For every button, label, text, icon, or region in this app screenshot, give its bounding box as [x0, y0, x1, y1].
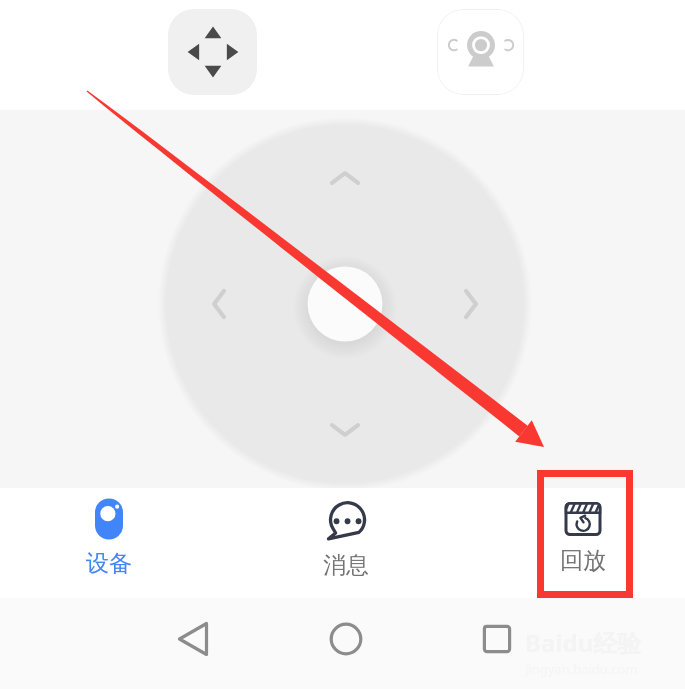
button[interactable]: 回放	[518, 483, 648, 593]
button[interactable]: Direction pad	[168, 9, 257, 95]
button[interactable]: Recents	[462, 604, 532, 674]
button[interactable]: Back	[158, 604, 228, 674]
staticText: 回放	[560, 546, 606, 575]
button[interactable]: 设备	[44, 483, 174, 593]
button[interactable]: 消息	[281, 483, 411, 593]
button[interactable]: Camera	[437, 9, 524, 95]
staticText: 设备	[86, 549, 132, 578]
button[interactable]: Home	[311, 604, 381, 674]
staticText: 消息	[323, 551, 369, 580]
